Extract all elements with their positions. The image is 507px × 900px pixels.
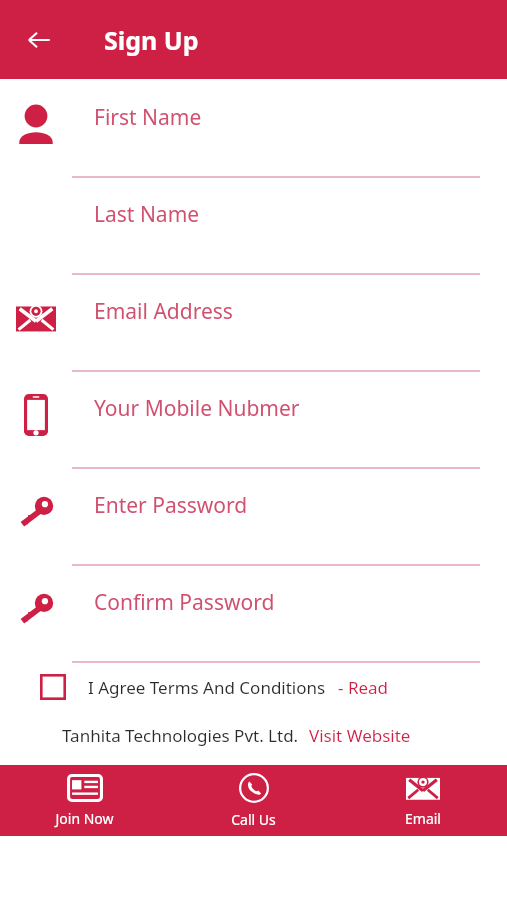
- button[interactable]: Email Address: [0, 275, 507, 372]
- button[interactable]: Join Now: [0, 765, 169, 836]
- button[interactable]: I Agree Terms And Conditions: [0, 663, 507, 711]
- staticText: Enter Password: [94, 491, 248, 520]
- button[interactable]: Your Mobile Nubmer: [0, 372, 507, 469]
- button[interactable]: Enter Password: [0, 469, 507, 566]
- staticText: Tanhita Technologies Pvt. Ltd.: [62, 724, 299, 747]
- button[interactable]: Visit Website: [309, 724, 411, 747]
- button[interactable]: Email: [338, 765, 507, 836]
- button[interactable]: Confirm Password: [0, 566, 507, 663]
- staticText: Email Address: [94, 297, 233, 326]
- staticText: Confirm Password: [94, 588, 275, 617]
- staticText: First Name: [94, 103, 202, 132]
- button[interactable]: First Name: [0, 81, 507, 178]
- button[interactable]: Last Name: [0, 178, 507, 275]
- button[interactable]: Back: [14, 15, 64, 65]
- button[interactable]: - Read: [338, 676, 389, 699]
- button[interactable]: Call Us: [169, 765, 338, 836]
- staticText: Call Us: [231, 810, 276, 829]
- staticText: Email: [405, 809, 441, 828]
- staticText: Join Now: [55, 809, 114, 828]
- staticText: Last Name: [94, 200, 200, 229]
- staticText: I Agree Terms And Conditions: [88, 676, 326, 699]
- staticText: Your Mobile Nubmer: [94, 394, 300, 423]
- staticText: Sign Up: [104, 23, 199, 57]
